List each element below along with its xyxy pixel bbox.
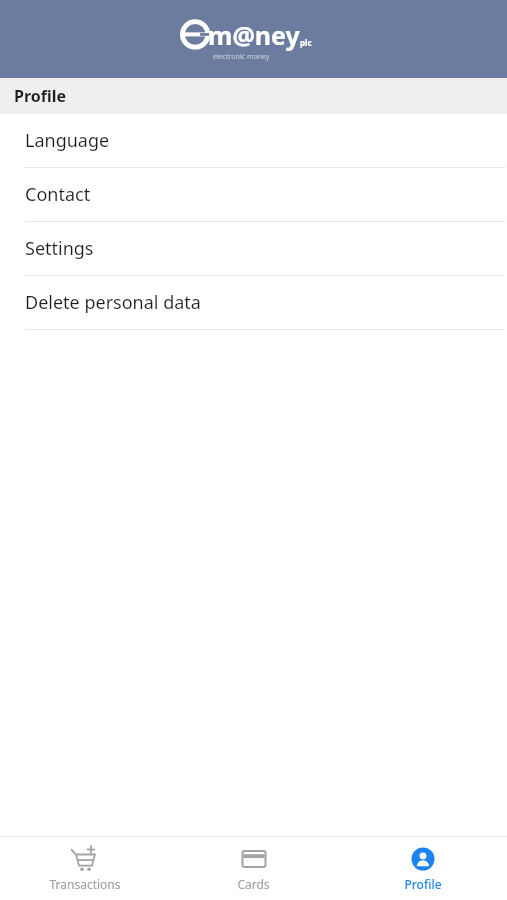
staticText: Profile xyxy=(14,85,67,107)
button[interactable]: Transactions xyxy=(0,837,169,900)
staticText: Settings xyxy=(25,236,94,261)
staticText: Language xyxy=(25,128,110,153)
button[interactable]: Delete personal data xyxy=(0,276,507,330)
staticText: Transactions xyxy=(49,876,121,892)
staticText: m@ney xyxy=(208,18,300,52)
staticText: electronic money xyxy=(213,52,270,62)
staticText: Contact xyxy=(25,182,91,207)
button[interactable]: Profile xyxy=(338,837,507,900)
staticText: plc xyxy=(300,37,312,48)
staticText: Profile xyxy=(404,876,442,892)
button[interactable]: Settings xyxy=(0,222,507,276)
staticText: Delete personal data xyxy=(25,290,201,315)
button[interactable]: Language xyxy=(0,114,507,168)
staticText: Cards xyxy=(237,876,270,892)
button[interactable]: Cards xyxy=(169,837,338,900)
button[interactable]: Contact xyxy=(0,168,507,222)
